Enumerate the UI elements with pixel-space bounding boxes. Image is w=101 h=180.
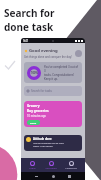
staticText: Upcoming <box>45 167 57 170</box>
button[interactable]: Profile <box>75 50 82 57</box>
button[interactable]: Attitude done <box>24 135 82 151</box>
staticText: done task <box>4 20 54 34</box>
staticText: 100% <box>31 71 38 75</box>
staticText: Attitude done <box>33 137 52 141</box>
staticText: Today <box>29 167 36 170</box>
staticText: Categories <box>65 167 77 170</box>
staticText: You've completed 3 out of 3 tasks. Congr… <box>44 65 79 81</box>
staticText: Search for <box>4 6 55 20</box>
button[interactable]: Upcoming <box>44 160 58 171</box>
button[interactable]: Search for tasks <box>24 86 82 96</box>
button[interactable]: Done <box>30 121 37 124</box>
staticText: Good evening <box>29 48 58 54</box>
staticText: Get things done and conquer the day! <box>24 55 72 59</box>
staticText: 9:41 <box>23 39 29 43</box>
button[interactable]: 100% <box>24 62 82 83</box>
staticText: 10 minutes ago <box>27 114 46 118</box>
button[interactable]: Categories <box>64 160 78 171</box>
staticText: Done <box>30 121 37 124</box>
staticText: You've checked off all your tasks. Well … <box>33 141 65 147</box>
staticText: Search for tasks <box>31 89 52 93</box>
staticText: Grocery <box>27 104 40 108</box>
staticText: Buy groceries <box>27 109 49 113</box>
button[interactable]: Today <box>28 160 37 171</box>
button[interactable]: Grocery <box>24 101 82 127</box>
